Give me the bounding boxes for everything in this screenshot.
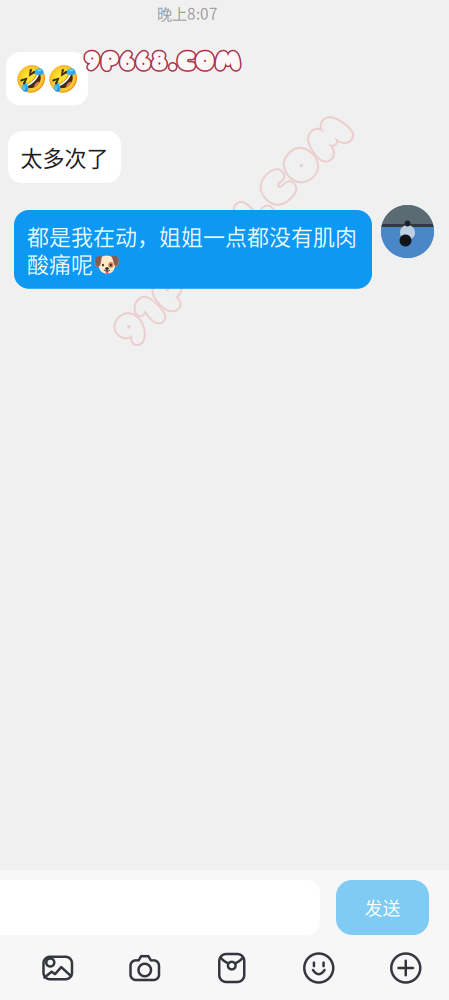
button[interactable]: 发送 [336,880,429,935]
staticText: 91PORN.COM [77,201,389,258]
button[interactable]: Red packet [214,953,250,983]
staticText: 太多次了 [20,141,108,173]
staticText: 91PORN.COM [79,204,391,261]
staticText: 都是我在动，姐姐一点都没有肌肉酸痛呢🐶 [27,222,357,277]
button[interactable]: More [388,953,424,983]
staticText: 91PORN.COM [76,203,388,259]
staticText: 发送 [364,894,400,921]
staticText: 91PORN.COM [78,201,390,257]
staticText: 9P668.COM [82,45,239,78]
staticText: 9P668.COM [85,44,242,77]
staticText: 9P668.COM [83,44,240,77]
staticText: 9P668.COM [84,45,241,78]
staticText: 9P668.COM [84,43,241,76]
staticText: 91PORN.COM [79,201,391,258]
staticText: 🤣🤣 [15,63,79,94]
staticText: 91PORN.COM [78,205,390,261]
staticText: 91PORN.COM [80,203,392,259]
button[interactable]: Photos [40,953,76,983]
staticText: 9P668.COM [84,46,241,79]
staticText: 9P668.COM [85,45,242,78]
button[interactable]: Emoji [301,953,337,983]
staticText: 9P668.COM [83,46,240,79]
staticText: 91PORN.COM [78,203,390,259]
button[interactable]: Camera [127,953,163,983]
staticText: 晚上8:07 [157,2,218,24]
staticText: 91PORN.COM [77,204,389,261]
staticText: 9P668.COM [85,46,242,79]
